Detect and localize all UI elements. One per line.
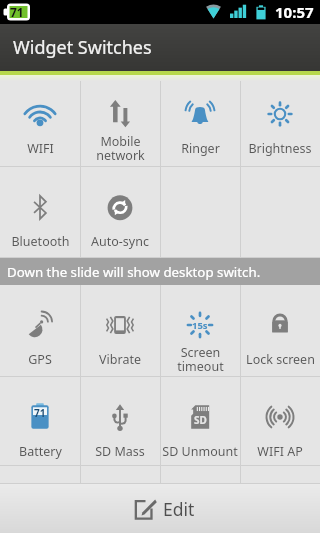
staticText: 71 bbox=[10, 4, 24, 20]
staticText: Edit bbox=[163, 497, 195, 521]
button[interactable]: 71 bbox=[0, 377, 80, 465]
staticText: Down the slide will show desktop switch. bbox=[7, 263, 261, 281]
staticText: Screen timeout bbox=[177, 344, 224, 375]
button[interactable]: Auto-sync bbox=[80, 167, 160, 257]
button[interactable]: SD Mass bbox=[80, 377, 160, 465]
button[interactable]: WIFI bbox=[0, 71, 80, 166]
button[interactable]: WIFI AP bbox=[240, 377, 320, 465]
button[interactable]: Ringer bbox=[160, 71, 240, 166]
button[interactable]: SD bbox=[160, 377, 240, 465]
staticText: Widget Switches bbox=[13, 35, 152, 60]
button[interactable]: GPS bbox=[0, 285, 80, 376]
staticText: SD Unmount bbox=[162, 443, 238, 460]
staticText: Brightness bbox=[248, 140, 312, 157]
staticText: WIFI AP bbox=[257, 443, 303, 460]
staticText: Auto-sync bbox=[91, 233, 149, 250]
staticText: GPS bbox=[28, 351, 52, 368]
staticText: SD bbox=[194, 413, 207, 427]
staticText: 10:57 bbox=[275, 2, 314, 22]
staticText: 15s bbox=[192, 319, 208, 332]
staticText: WIFI bbox=[27, 140, 54, 157]
button[interactable]: Bluetooth bbox=[0, 167, 80, 257]
staticText: Mobile network bbox=[96, 133, 145, 164]
button[interactable]: Lock screen bbox=[240, 285, 320, 376]
staticText: Bluetooth bbox=[11, 233, 70, 250]
staticText: Battery bbox=[19, 443, 62, 460]
staticText: Ringer bbox=[181, 140, 220, 157]
staticText: SD Mass bbox=[95, 443, 145, 460]
button[interactable]: Mobile network bbox=[80, 71, 160, 166]
staticText: Vibrate bbox=[99, 351, 141, 368]
button[interactable]: Vibrate bbox=[80, 285, 160, 376]
staticText: 71 bbox=[34, 406, 46, 420]
staticText: Lock screen bbox=[246, 351, 315, 368]
button[interactable]: 15s bbox=[160, 285, 240, 376]
button[interactable]: Brightness bbox=[240, 71, 320, 166]
button[interactable]: Edit bbox=[122, 491, 207, 527]
